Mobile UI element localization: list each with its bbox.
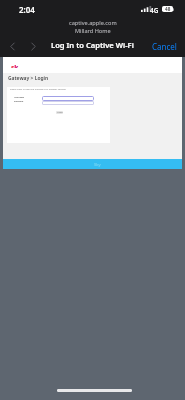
- button[interactable]: Login: [56, 111, 63, 114]
- staticText: 2:04: [19, 4, 35, 15]
- staticText: Please login to view and manage your Gat…: [10, 88, 66, 91]
- staticText: 48: [165, 6, 171, 12]
- staticText: captive.apple.com: [69, 19, 117, 27]
- staticText: Login: [57, 111, 63, 114]
- button[interactable]: Back: [4, 38, 20, 54]
- staticText: Log In to Captive Wi-Fi: [51, 40, 134, 50]
- button[interactable]: Cancel: [152, 41, 177, 52]
- staticText: Millard Home: [75, 27, 111, 35]
- button[interactable]: Forward: [25, 38, 41, 54]
- staticText: sky: [11, 63, 20, 68]
- staticText: 4G: [150, 6, 159, 15]
- staticText: Password: [14, 100, 24, 103]
- staticText: Gateway > Login: [8, 75, 49, 82]
- staticText: Username: [14, 96, 24, 99]
- staticText: Cancel: [152, 41, 177, 52]
- staticText: Sky: [94, 162, 101, 168]
